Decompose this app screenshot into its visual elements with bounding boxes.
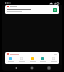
- button[interactable]: Recent apps: [46, 65, 52, 71]
- button[interactable]: Share link: [18, 57, 25, 62]
- button[interactable]: Share to chat: [7, 57, 14, 62]
- button[interactable]: Send: [39, 57, 46, 62]
- button[interactable]: Open item: [53, 8, 57, 12]
- button[interactable]: Save: [29, 57, 36, 62]
- button[interactable]: Home: [29, 65, 35, 71]
- button[interactable]: Back: [13, 65, 19, 71]
- button[interactable]: More: [50, 57, 57, 62]
- button[interactable]: Open item: [5, 5, 59, 14]
